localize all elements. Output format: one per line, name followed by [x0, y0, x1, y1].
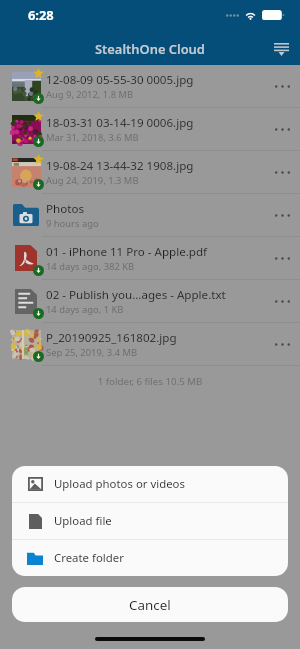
button[interactable]: More options — [264, 108, 300, 150]
button[interactable]: Upload file — [12, 503, 288, 539]
staticText: P_20190925_161802.jpg — [46, 330, 177, 346]
staticText: 9 hours ago — [46, 217, 99, 230]
button[interactable]: 12-08-09 05-55-30 0005.jpg — [0, 65, 300, 107]
staticText: Cancel — [129, 596, 171, 614]
button[interactable]: Create folder — [12, 540, 288, 576]
button[interactable]: 18-03-31 03-14-19 0006.jpg — [0, 108, 300, 150]
staticText: Aug 24, 2019, 1.3 MB — [46, 174, 139, 187]
staticText: Upload file — [54, 513, 112, 529]
staticText: 12-08-09 05-55-30 0005.jpg — [46, 72, 194, 88]
button[interactable]: More options — [264, 237, 300, 279]
staticText: 1 folder, 6 files 10.5 MB — [0, 375, 300, 388]
staticText: Sep 25, 2019, 3.4 MB — [46, 346, 138, 359]
staticText: Upload photos or videos — [54, 476, 185, 492]
staticText: Create folder — [54, 550, 124, 566]
button[interactable]: 19-08-24 13-44-32 1908.jpg — [0, 151, 300, 193]
button[interactable]: Photos — [0, 194, 300, 236]
staticText: 6:28 — [28, 6, 54, 24]
staticText: StealthOne Cloud — [95, 40, 205, 58]
staticText: 14 days ago, 382 KB — [46, 260, 135, 273]
button[interactable]: P_20190925_161802.jpg — [0, 323, 300, 365]
staticText: 18-03-31 03-14-19 0006.jpg — [46, 115, 194, 131]
button[interactable]: Cancel — [12, 587, 288, 622]
button[interactable]: More options — [264, 280, 300, 322]
button[interactable]: Upload photos or videos — [12, 466, 288, 502]
staticText: Mar 31, 2018, 3.6 MB — [46, 131, 139, 144]
button[interactable]: More options — [264, 194, 300, 236]
staticText: 14 days ago, 1 KB — [46, 303, 124, 316]
button[interactable]: More options — [264, 151, 300, 193]
staticText: 01 - iPhone 11 Pro - Apple.pdf — [46, 244, 208, 260]
button[interactable]: 02 - Publish you...ages - Apple.txt — [0, 280, 300, 322]
staticText: 02 - Publish you...ages - Apple.txt — [46, 287, 226, 303]
staticText: Photos — [46, 201, 84, 217]
button[interactable]: 01 - iPhone 11 Pro - Apple.pdf — [0, 237, 300, 279]
staticText: Aug 9, 2012, 1.8 MB — [46, 88, 134, 101]
button[interactable]: Sort — [268, 36, 294, 62]
button[interactable]: More options — [264, 323, 300, 365]
staticText: 19-08-24 13-44-32 1908.jpg — [46, 158, 194, 174]
button[interactable]: More options — [264, 65, 300, 107]
